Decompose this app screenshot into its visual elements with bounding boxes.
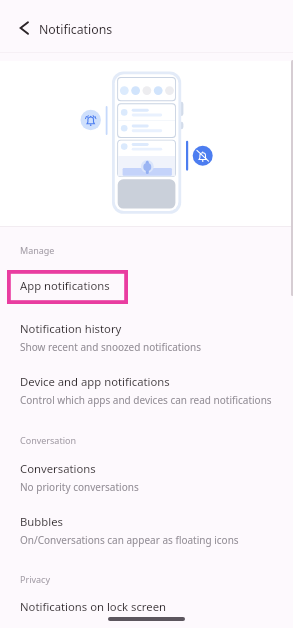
button[interactable]: Device and app notifications: [0, 371, 293, 413]
staticText: Manage: [20, 244, 55, 256]
staticText: Conversation: [20, 434, 76, 446]
staticText: Conversations: [20, 461, 96, 476]
staticText: On/Conversations can appear as floating …: [20, 533, 239, 547]
button[interactable]: Conversations: [0, 458, 293, 500]
staticText: Device and app notifications: [20, 374, 170, 389]
staticText: Notification history: [20, 321, 122, 336]
button[interactable]: Notification history: [0, 318, 293, 360]
staticText: Show recent and snoozed notifications: [20, 340, 202, 354]
button[interactable]: Back: [13, 16, 37, 40]
staticText: App notifications: [20, 278, 110, 293]
button[interactable]: Notifications on lock screen: [0, 594, 293, 620]
staticText: Privacy: [20, 573, 51, 585]
staticText: Control which apps and devices can read …: [20, 393, 272, 407]
staticText: Bubbles: [20, 514, 63, 529]
button[interactable]: App notifications: [0, 267, 293, 301]
staticText: Notifications on lock screen: [20, 599, 167, 614]
staticText: Notifications: [39, 21, 113, 38]
button[interactable]: Bubbles: [0, 511, 293, 553]
staticText: No priority conversations: [20, 480, 139, 494]
